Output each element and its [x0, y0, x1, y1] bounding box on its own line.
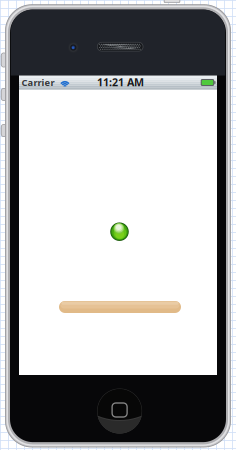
- staticText: Carrier: [21, 76, 54, 89]
- staticText: 11:21 AM: [97, 75, 144, 89]
